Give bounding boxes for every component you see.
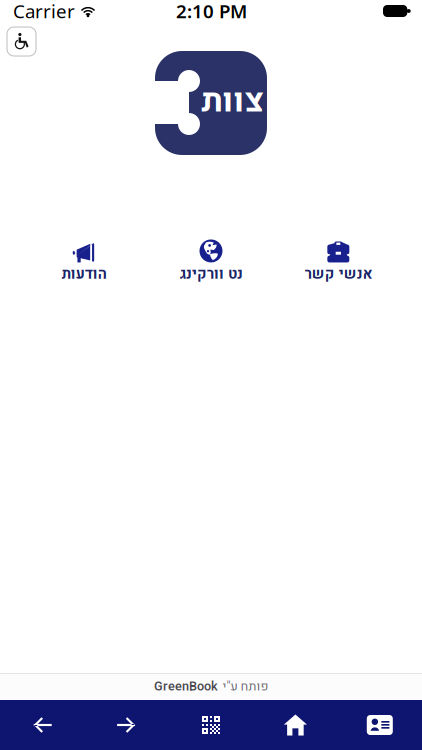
staticText: 2:10 PM [176,0,247,23]
button[interactable]: Home [253,700,338,750]
staticText: אנשי קשר [304,263,372,285]
button[interactable]: Accessibility options [7,27,36,56]
button[interactable]: Back [0,700,84,750]
staticText: Carrier [13,0,75,23]
staticText: נט וורקינג [179,263,242,285]
button[interactable]: הודעות [20,237,147,285]
staticText: הודעות [61,263,106,285]
button[interactable]: נט וורקינג [147,237,275,285]
button[interactable]: Forward [84,700,169,750]
button[interactable]: Contacts [338,700,422,750]
button[interactable]: אנשי קשר [275,237,402,285]
button[interactable]: Scan QR code [169,700,253,750]
staticText: GreenBook [154,677,218,696]
staticText: פותח ע"י [222,677,268,696]
staticText: צוות [201,76,263,125]
